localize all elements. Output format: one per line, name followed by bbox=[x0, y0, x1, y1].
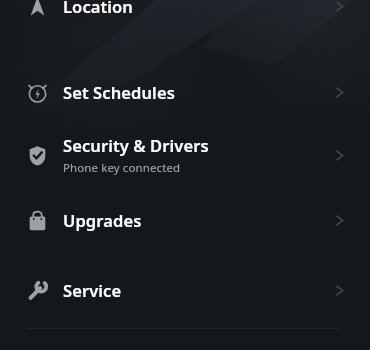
other: Open Location bbox=[333, 0, 346, 13]
button[interactable]: Location bbox=[0, 0, 370, 40]
staticText: Phone key connected bbox=[63, 160, 181, 176]
other: Open Set Schedules bbox=[333, 86, 346, 99]
button[interactable]: Service bbox=[0, 266, 370, 314]
other: Open Service bbox=[333, 284, 346, 297]
other: Open Upgrades bbox=[333, 214, 346, 227]
button[interactable]: Set Schedules bbox=[0, 68, 370, 116]
button[interactable]: Security & Drivers bbox=[0, 126, 370, 184]
staticText: Upgrades bbox=[63, 209, 142, 231]
staticText: Set Schedules bbox=[63, 81, 175, 103]
staticText: Security & Drivers bbox=[63, 134, 209, 156]
staticText: Location bbox=[63, 0, 134, 17]
other: Open Security & Drivers bbox=[333, 149, 346, 162]
staticText: Service bbox=[63, 279, 122, 301]
button[interactable]: Upgrades bbox=[0, 196, 370, 244]
